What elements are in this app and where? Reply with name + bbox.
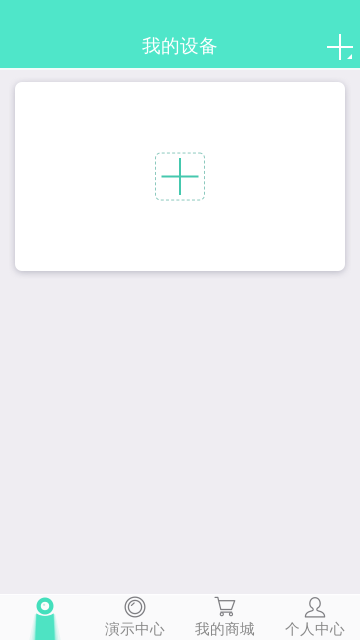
- button[interactable]: Add device: [322, 29, 360, 63]
- staticText: 演示中心: [105, 620, 165, 638]
- staticText: 我的设备: [142, 34, 218, 57]
- staticText: 我的商城: [195, 620, 255, 638]
- staticText: 个人中心: [285, 620, 345, 638]
- button[interactable]: 个人中心: [270, 595, 360, 640]
- button[interactable]: 演示中心: [90, 595, 180, 640]
- button[interactable]: Add a device: [155, 152, 205, 200]
- button[interactable]: 我的设备: [0, 595, 90, 640]
- button[interactable]: 我的商城: [180, 595, 270, 640]
